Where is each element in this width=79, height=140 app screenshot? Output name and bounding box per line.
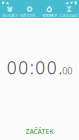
button[interactable]: ZAČÁTEK xyxy=(0,124,79,139)
button[interactable]: ČASOVAČ xyxy=(59,5,79,18)
staticText: 00:00. xyxy=(7,56,62,79)
button[interactable]: BUDÍKY xyxy=(0,5,20,18)
staticText: STOPKY xyxy=(42,13,56,18)
staticText: 00 xyxy=(62,64,72,77)
staticText: BUDÍKY xyxy=(2,13,17,18)
staticText: ČASOVAČ xyxy=(60,13,79,18)
staticText: SVĚTOVÝ ČAS xyxy=(20,13,40,18)
staticText: ZAČÁTEK xyxy=(25,127,53,136)
button[interactable]: SVĚTOVÝ ČAS xyxy=(20,5,40,18)
button[interactable]: STOPKY xyxy=(39,5,59,18)
